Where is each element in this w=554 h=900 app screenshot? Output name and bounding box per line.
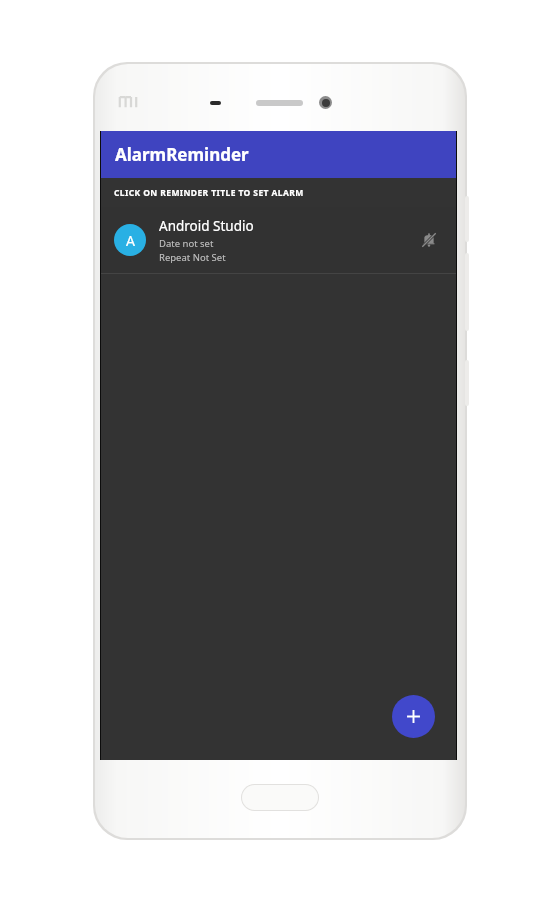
staticText: Date not set	[159, 237, 214, 250]
staticText: Android Studio	[159, 217, 254, 235]
staticText: AlarmReminder	[115, 143, 249, 166]
button[interactable]: A	[101, 207, 456, 273]
staticText: CLICK ON REMINDER TITLE TO SET ALARM	[114, 187, 304, 199]
button[interactable]: AlarmReminder	[101, 131, 456, 178]
button[interactable]: Add reminder	[392, 695, 435, 738]
staticText: A	[126, 231, 135, 250]
staticText: Repeat Not Set	[159, 251, 226, 264]
button[interactable]: Toggle alarm notification	[415, 226, 443, 254]
